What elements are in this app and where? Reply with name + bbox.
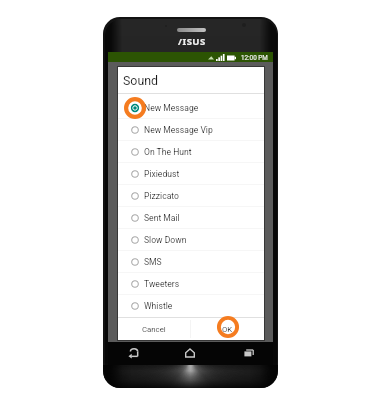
staticText: Sound xyxy=(123,73,159,88)
button[interactable]: Back xyxy=(126,345,141,360)
staticText: Tweeters xyxy=(144,279,180,289)
staticText: New Message xyxy=(144,103,199,113)
staticText: Whistle xyxy=(144,301,173,311)
button[interactable]: Sent Mail xyxy=(118,207,264,228)
staticText: OK xyxy=(222,325,233,334)
button[interactable]: Pixiedust xyxy=(118,163,264,184)
button[interactable]: Home xyxy=(182,345,197,360)
button[interactable]: New Message xyxy=(118,97,264,118)
button[interactable]: SMS xyxy=(118,251,264,272)
button[interactable]: Whistle xyxy=(118,295,264,316)
staticText: New Message Vip xyxy=(144,125,213,135)
staticText: Cancel xyxy=(142,325,166,334)
staticText: On The Hunt xyxy=(144,147,192,157)
staticText: Slow Down xyxy=(144,235,187,245)
button[interactable]: Pizzicato xyxy=(118,185,264,206)
button[interactable]: New Message Vip xyxy=(118,119,264,140)
staticText: 12:00 PM xyxy=(241,54,268,61)
staticText: SMS xyxy=(144,257,162,267)
button[interactable]: Recent apps xyxy=(241,345,256,360)
button[interactable]: On The Hunt xyxy=(118,141,264,162)
staticText: Pixiedust xyxy=(144,169,180,179)
button[interactable]: Tweeters xyxy=(118,273,264,294)
staticText: /ISUS xyxy=(178,35,206,48)
staticText: Sent Mail xyxy=(144,213,180,223)
button[interactable]: Slow Down xyxy=(118,229,264,250)
button[interactable]: OK xyxy=(191,318,264,340)
button[interactable]: Cancel xyxy=(118,318,190,340)
staticText: Pizzicato xyxy=(144,191,179,201)
